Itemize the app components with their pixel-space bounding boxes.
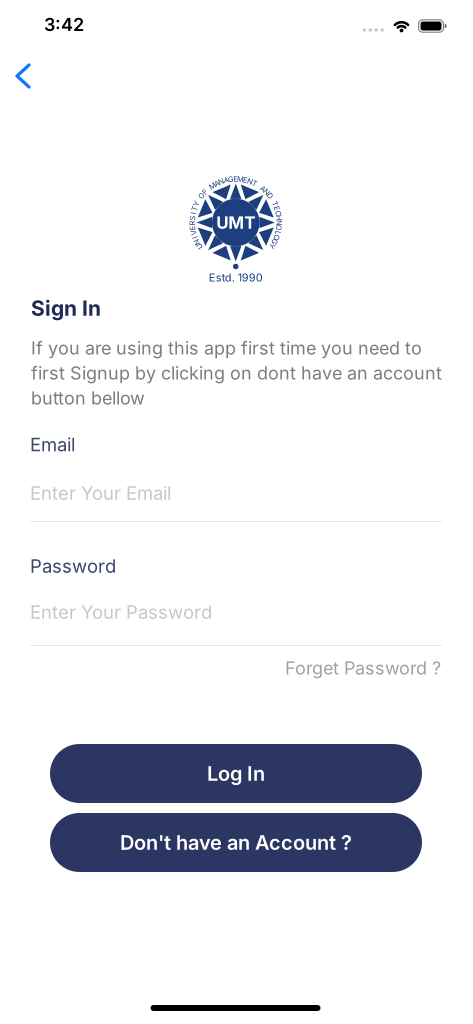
staticText: N [276, 218, 282, 227]
staticText: I [194, 233, 196, 242]
staticText: If you are using this app first time you… [31, 337, 422, 359]
staticText: Forget Password ? [285, 657, 441, 679]
staticText: A [260, 184, 265, 193]
staticText: A [214, 179, 219, 188]
staticText [272, 195, 274, 204]
staticText: Enter Your Email [30, 482, 171, 504]
staticText: UMT [216, 212, 255, 233]
staticText: E [243, 176, 248, 185]
staticText: F [203, 187, 207, 196]
staticText: L [276, 228, 280, 237]
staticText: O [199, 191, 205, 200]
staticText: D [267, 191, 272, 200]
staticText: Log In [207, 761, 265, 786]
staticText: E [233, 174, 238, 184]
staticText: Sign In [31, 295, 101, 321]
button[interactable]: Log In [50, 744, 422, 803]
staticText: Password [30, 555, 116, 577]
staticText: Estd. 1990 [209, 271, 263, 284]
staticText: first Signup by clicking on dont have an… [31, 362, 442, 384]
staticText: button bellow [31, 387, 145, 409]
button[interactable]: Forget Password ? [285, 657, 441, 679]
staticText: M [237, 175, 244, 184]
staticText: Enter Your Password [30, 601, 212, 623]
staticText: O [276, 223, 282, 232]
staticText: U [196, 242, 202, 251]
staticText: V [191, 228, 196, 237]
staticText: Don't have an Account ? [120, 830, 352, 855]
staticText: O [274, 233, 280, 242]
staticText: M [209, 181, 216, 190]
staticText: T [192, 204, 197, 213]
staticText [207, 184, 209, 193]
button[interactable]: Don't have an Account ? [50, 813, 422, 872]
staticText [258, 181, 260, 190]
staticText [198, 195, 200, 204]
staticText: R [190, 218, 195, 227]
staticText: G [272, 237, 278, 246]
staticText: T [273, 199, 278, 208]
staticText: N [194, 237, 200, 246]
staticText: A [223, 176, 228, 185]
staticText: C [276, 209, 281, 218]
staticText: N [247, 177, 253, 186]
staticText: Email [30, 433, 75, 456]
staticText: T [252, 179, 257, 188]
staticText: N [218, 177, 224, 186]
staticText: G [228, 175, 234, 184]
staticText: I [192, 209, 194, 218]
staticText: Y [270, 242, 275, 251]
staticText: E [274, 204, 279, 213]
staticText: S [190, 213, 195, 223]
button[interactable]: Back [2, 53, 46, 97]
staticText: N [264, 187, 270, 196]
staticText: Y [194, 199, 199, 208]
staticText: H [276, 213, 282, 223]
staticText: 3:42 [44, 14, 84, 35]
staticText: E [190, 223, 195, 232]
